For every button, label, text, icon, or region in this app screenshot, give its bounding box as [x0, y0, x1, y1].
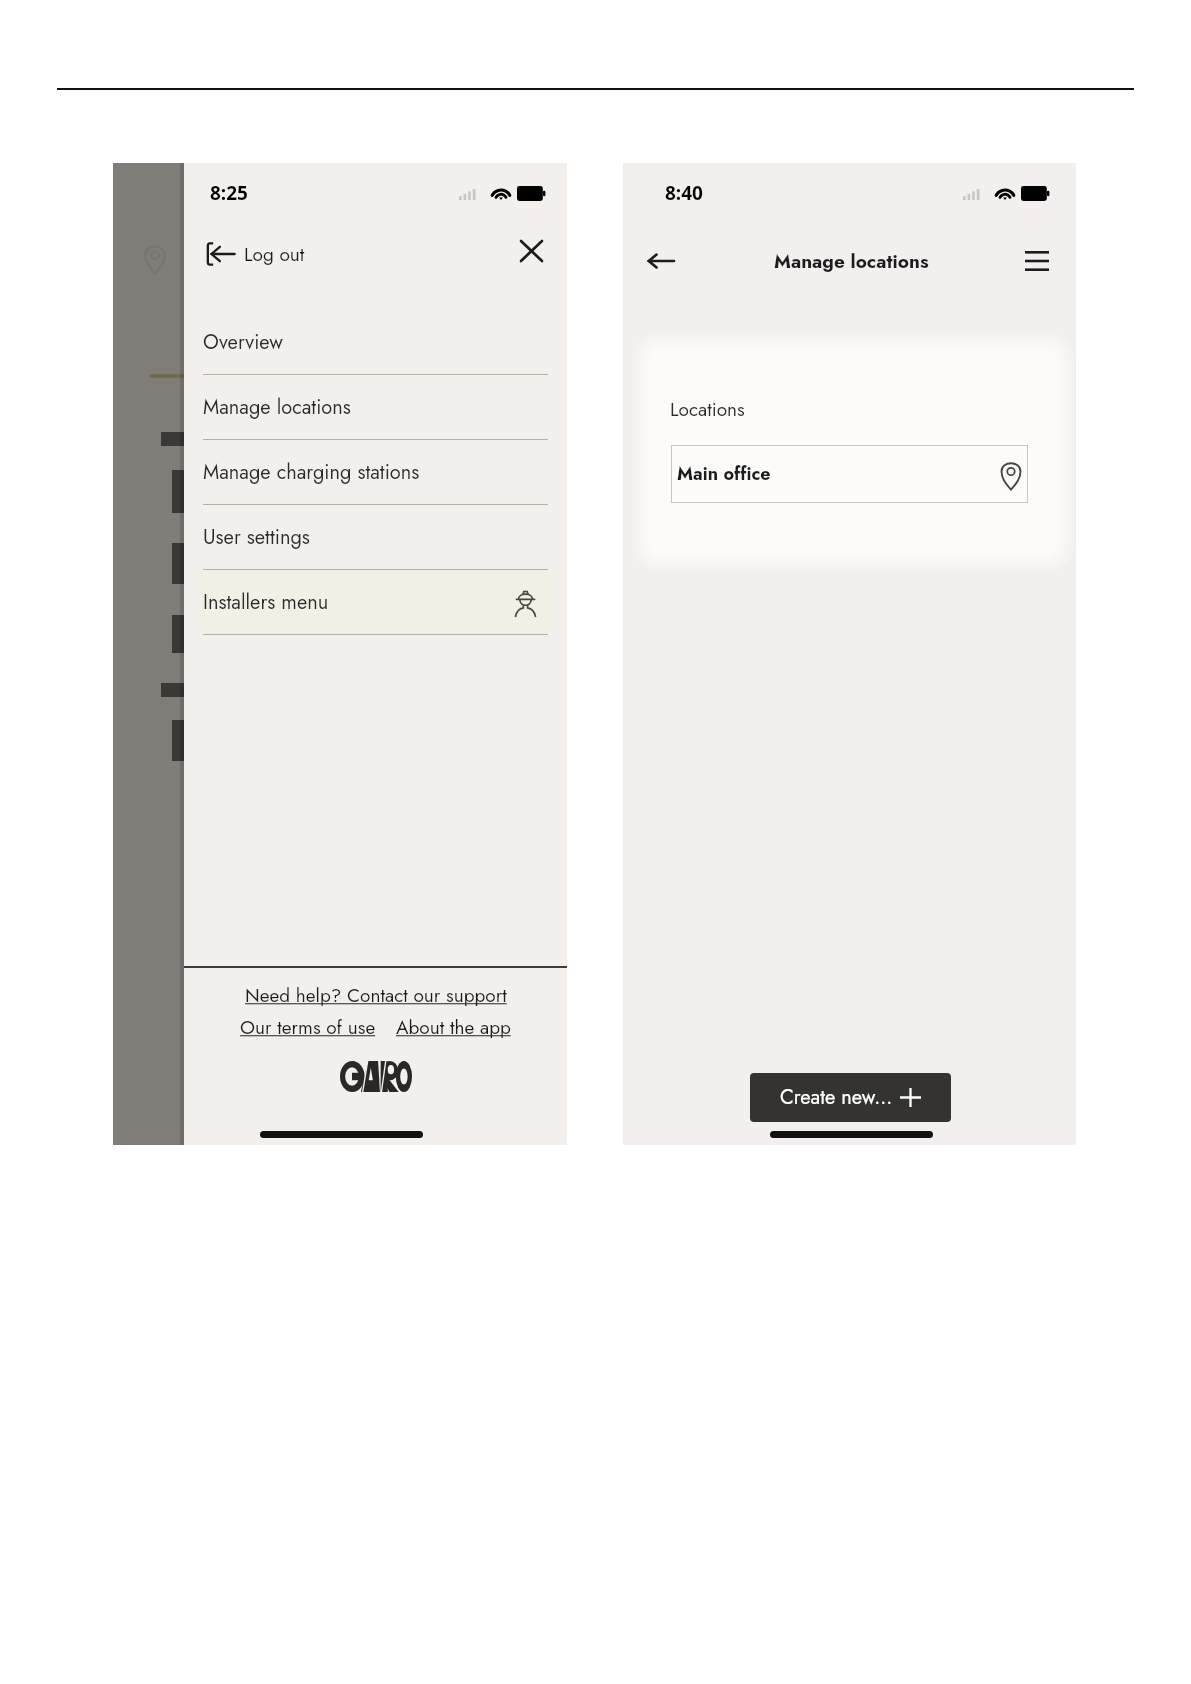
- button[interactable]: Main office: [671, 445, 1028, 503]
- button[interactable]: GARO: [340, 1061, 412, 1092]
- staticText: Need help? Contact our support: [245, 982, 507, 1009]
- staticText: Manage charging stations: [203, 458, 420, 487]
- button[interactable]: Back: [637, 237, 685, 285]
- button[interactable]: Our terms of use: [238, 1013, 378, 1042]
- button[interactable]: Installers menu: [200, 570, 553, 634]
- button[interactable]: Close: [511, 231, 551, 271]
- staticText: 8:25: [210, 180, 248, 206]
- button[interactable]: Overview: [200, 310, 553, 374]
- button[interactable]: User settings: [200, 505, 553, 569]
- button[interactable]: Menu: [1013, 237, 1061, 285]
- staticText: Main office: [677, 461, 771, 487]
- staticText: Locations: [670, 396, 745, 423]
- button[interactable]: About the app: [394, 1013, 513, 1042]
- button[interactable]: Manage locations: [200, 375, 553, 439]
- staticText: Log out: [244, 241, 305, 268]
- staticText: Installers menu: [203, 588, 329, 617]
- button[interactable]: Create new...: [750, 1073, 951, 1122]
- button[interactable]: Manage charging stations: [200, 440, 553, 504]
- button[interactable]: Log out: [207, 230, 311, 278]
- staticText: Create new...: [780, 1083, 893, 1112]
- staticText: Our terms of use: [240, 1014, 376, 1041]
- staticText: Manage locations: [774, 248, 929, 275]
- staticText: About the app: [396, 1014, 511, 1041]
- button[interactable]: Need help? Contact our support: [243, 981, 509, 1010]
- staticText: Overview: [203, 328, 283, 357]
- staticText: 8:40: [665, 180, 703, 206]
- staticText: User settings: [203, 523, 310, 552]
- staticText: Manage locations: [203, 393, 351, 422]
